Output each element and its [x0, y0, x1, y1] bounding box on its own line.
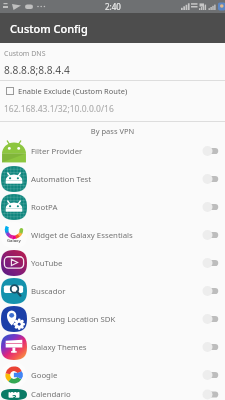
other: Toggle: [201, 201, 219, 213]
button[interactable]: Buscador: [0, 277, 225, 305]
other: Toggle: [201, 369, 219, 381]
staticText: 8.8.8.8;8.8.4.4: [4, 63, 70, 77]
button[interactable]: Samsung Location SDK: [0, 305, 225, 333]
staticText: 2:40: [105, 1, 121, 12]
staticText: Google: [31, 370, 201, 381]
staticText: Galaxy: [7, 238, 21, 244]
staticText: Custom Config: [10, 21, 88, 36]
button[interactable]: Enable Exclude (Custom Route): [0, 85, 225, 97]
other: Toggle: [201, 173, 219, 185]
other: Toggle: [201, 145, 219, 157]
staticText: 162.168.43.1/32;10.0.0.0/16: [4, 103, 114, 115]
staticText: Widget de Galaxy Essentials: [31, 230, 201, 241]
staticText: By pass VPN: [0, 126, 225, 136]
button[interactable]: Galaxy: [0, 221, 225, 249]
staticText: 3: [12, 392, 17, 400]
staticText: Custom DNS: [4, 49, 46, 59]
staticText: Enable Exclude (Custom Route): [18, 86, 128, 96]
button[interactable]: YouTube: [0, 249, 225, 277]
staticText: Calendario: [31, 389, 201, 400]
staticText: YouTube: [31, 258, 201, 269]
staticText: Galaxy Themes: [31, 342, 201, 353]
other: Toggle: [201, 313, 219, 325]
button[interactable]: Galaxy Themes: [0, 333, 225, 361]
other: Toggle: [201, 341, 219, 353]
staticText: Filter Provider: [31, 146, 201, 157]
button[interactable]: Filter Provider: [0, 137, 225, 165]
button[interactable]: RootPA: [0, 193, 225, 221]
other: Toggle: [201, 257, 219, 269]
other: Toggle: [201, 285, 219, 297]
staticText: Automation Test: [31, 174, 201, 185]
staticText: RootPA: [31, 202, 201, 213]
other: Toggle: [201, 229, 219, 241]
other: Toggle: [201, 389, 219, 400]
button[interactable]: 3: [0, 389, 225, 400]
staticText: Buscador: [31, 286, 201, 297]
button[interactable]: Automation Test: [0, 165, 225, 193]
button[interactable]: Google: [0, 361, 225, 389]
staticText: Samsung Location SDK: [31, 314, 201, 325]
